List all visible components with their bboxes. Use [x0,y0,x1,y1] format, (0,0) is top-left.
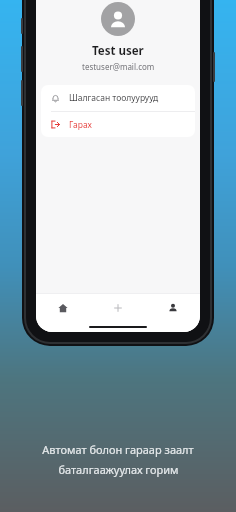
staticText: testuser@mail.com [82,61,155,72]
staticText: баталгаажуулах горим [58,462,179,477]
staticText: Автомат болон гараар заалт [42,442,194,457]
button[interactable]: Шалгасан тоолуурууд [41,85,195,111]
button[interactable]: Гарах [41,112,195,137]
staticText: Гарах [69,119,92,131]
button[interactable]: Add [90,294,145,321]
button[interactable]: Profile [145,294,200,321]
staticText: Test user [92,43,144,59]
button[interactable]: Home [36,294,90,321]
staticText: Шалгасан тоолуурууд [69,92,159,104]
